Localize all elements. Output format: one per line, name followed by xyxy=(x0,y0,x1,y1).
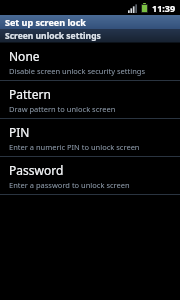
staticText: 11:39 xyxy=(152,2,176,14)
staticText: Pattern xyxy=(9,86,51,102)
staticText: Set up screen lock xyxy=(5,16,86,28)
staticText: Screen unlock settings xyxy=(5,30,101,42)
staticText: Enter a password to unlock screen xyxy=(9,180,130,190)
staticText: Draw pattern to unlock screen xyxy=(9,104,116,114)
button[interactable]: None xyxy=(0,43,180,80)
button[interactable]: PIN xyxy=(0,119,180,156)
button[interactable]: Password xyxy=(0,157,180,194)
staticText: Password xyxy=(9,162,64,178)
staticText: None xyxy=(9,48,40,64)
staticText: Enter a numeric PIN to unlock screen xyxy=(9,142,140,152)
staticText: PIN xyxy=(9,124,30,140)
staticText: Disable screen unlock security settings xyxy=(9,66,146,76)
button[interactable]: Pattern xyxy=(0,81,180,118)
